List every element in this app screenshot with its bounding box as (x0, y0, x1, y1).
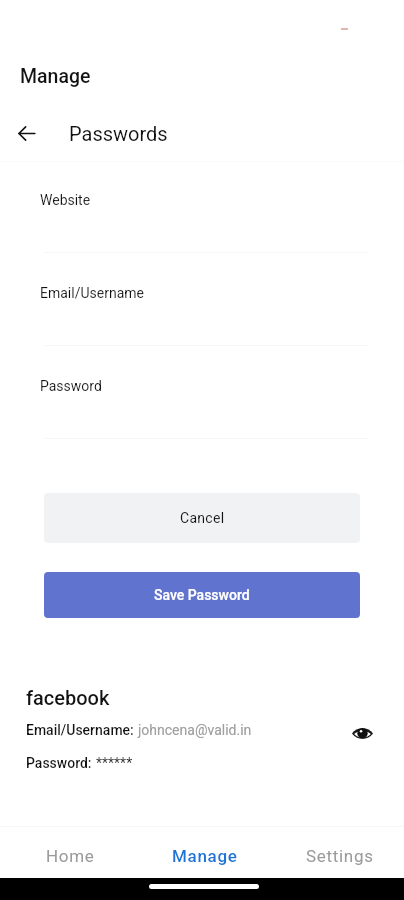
button[interactable]: Website (0, 188, 404, 258)
staticText: Website (40, 192, 91, 208)
staticText: Email/Username (40, 285, 144, 301)
button[interactable]: Back (0, 111, 52, 155)
button[interactable]: Password (0, 374, 404, 444)
staticText: Manage (20, 65, 91, 88)
staticText: ****** (96, 755, 133, 771)
staticText: Manage (172, 846, 238, 866)
staticText: Cancel (180, 510, 225, 526)
staticText: Passwords (69, 122, 168, 145)
button[interactable]: Email/Username (0, 281, 404, 351)
button[interactable]: Home (3, 827, 137, 878)
staticText: Password: (26, 755, 96, 771)
staticText: Save Password (154, 587, 250, 603)
staticText: Home (46, 846, 95, 866)
button[interactable]: Settings (272, 827, 404, 878)
staticText: johncena@valid.in (138, 722, 252, 738)
staticText: Password (40, 378, 102, 394)
button[interactable]: Manage (137, 827, 272, 878)
button[interactable]: Cancel (44, 493, 360, 543)
button[interactable]: Save Password (44, 572, 360, 618)
button[interactable]: Show password (343, 714, 381, 752)
staticText: facebook (26, 686, 110, 709)
staticText: Email/Username: (26, 722, 138, 738)
staticText: Settings (306, 846, 374, 866)
